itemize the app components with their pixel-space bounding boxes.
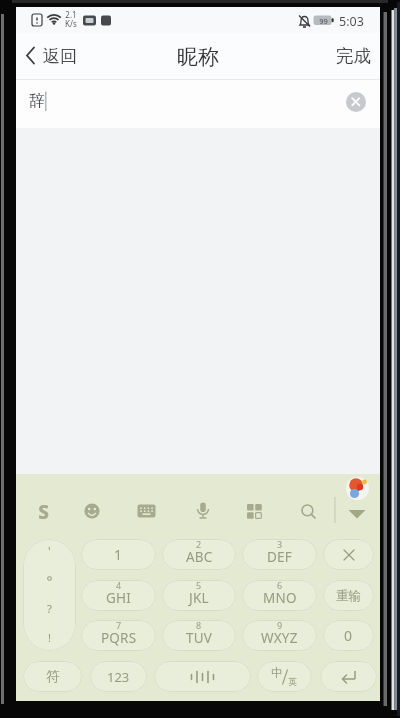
staticText: 返回 xyxy=(43,46,77,67)
button[interactable] xyxy=(348,509,366,519)
button[interactable]: S xyxy=(32,499,54,523)
staticText: 123 xyxy=(107,668,130,686)
staticText: 8 xyxy=(196,620,202,631)
staticText: ABC xyxy=(186,548,213,566)
button[interactable]: 返回 xyxy=(20,39,92,73)
staticText: 中 xyxy=(271,665,283,680)
staticText: PQRS xyxy=(101,629,137,647)
staticText: 2 xyxy=(196,539,202,550)
staticText: ' xyxy=(48,543,51,559)
button[interactable]: 4 xyxy=(81,580,156,611)
button[interactable] xyxy=(301,504,317,520)
staticText: 2.1 xyxy=(65,9,77,20)
staticText: 9 xyxy=(277,620,283,631)
button[interactable] xyxy=(323,539,374,570)
button[interactable]: ' xyxy=(23,539,76,651)
staticText: 99 xyxy=(319,16,328,26)
staticText: 1 xyxy=(114,545,123,564)
button[interactable]: 完成 xyxy=(321,39,371,73)
staticText: S xyxy=(38,499,49,523)
button[interactable]: 重输 xyxy=(323,580,374,611)
staticText: K/s xyxy=(65,18,77,29)
staticText: TUV xyxy=(186,629,213,647)
button[interactable] xyxy=(154,661,251,692)
button[interactable] xyxy=(83,502,101,520)
button[interactable]: 5 xyxy=(162,580,236,611)
staticText: 4 xyxy=(116,580,122,591)
button[interactable]: 3 xyxy=(242,539,317,570)
button[interactable] xyxy=(247,504,262,519)
staticText: GHI xyxy=(106,589,132,607)
staticText: ? xyxy=(47,601,52,616)
staticText: 5 xyxy=(196,580,202,591)
button[interactable]: 7 xyxy=(81,620,156,651)
button[interactable] xyxy=(195,502,211,520)
button[interactable]: 123 xyxy=(90,661,147,692)
staticText: ! xyxy=(48,630,51,645)
staticText: 辞 xyxy=(29,91,45,111)
button[interactable]: 2 xyxy=(162,539,236,570)
staticText: 昵称 xyxy=(177,44,219,70)
button[interactable] xyxy=(346,477,369,500)
button[interactable]: 6 xyxy=(242,580,317,611)
button[interactable]: 1 xyxy=(81,539,156,570)
staticText: DEF xyxy=(267,548,292,566)
staticText: 3 xyxy=(277,539,283,550)
button[interactable] xyxy=(346,92,366,112)
button[interactable] xyxy=(320,661,377,692)
staticText: 英 xyxy=(288,676,297,687)
staticText: 完成 xyxy=(336,45,371,67)
button[interactable]: 8 xyxy=(162,620,236,651)
staticText: MNO xyxy=(263,589,297,607)
button[interactable]: 中 xyxy=(257,661,312,692)
button[interactable]: 0 xyxy=(323,620,374,651)
staticText: 符 xyxy=(46,668,60,685)
staticText: 7 xyxy=(116,620,122,631)
staticText: 6 xyxy=(277,580,283,591)
staticText: 重输 xyxy=(336,588,361,604)
button[interactable]: 符 xyxy=(23,661,82,692)
staticText: WXYZ xyxy=(261,629,298,647)
button[interactable] xyxy=(137,504,156,518)
staticText: 5:03 xyxy=(339,13,364,28)
button[interactable]: 9 xyxy=(242,620,317,651)
staticText: 0 xyxy=(344,626,353,645)
staticText: JKL xyxy=(189,589,209,607)
